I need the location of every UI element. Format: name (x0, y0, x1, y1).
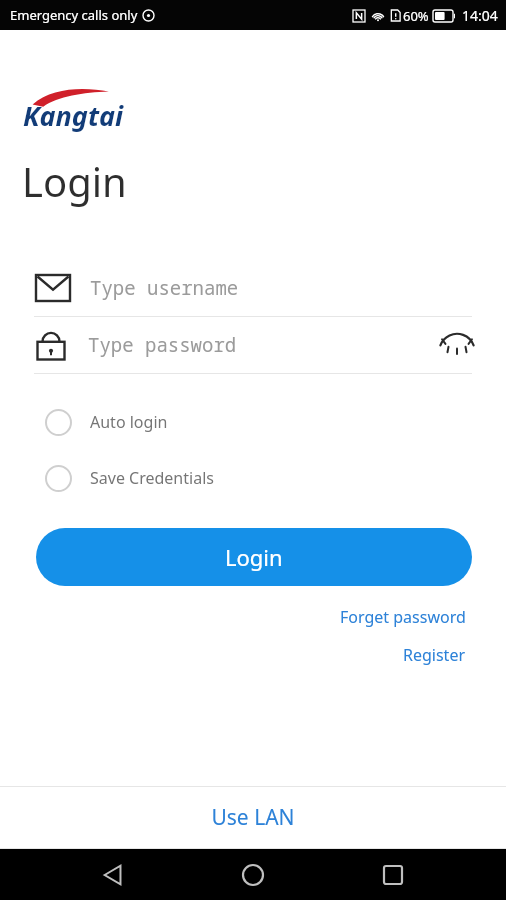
staticText: Save Credentials (90, 467, 214, 489)
staticText: 14:04 (462, 6, 498, 25)
button[interactable]: Register (387, 642, 506, 668)
button[interactable]: Auto login (0, 400, 506, 444)
staticText: Login (225, 542, 283, 572)
staticText: 60% (403, 7, 429, 25)
button[interactable]: Login (36, 528, 472, 586)
staticText: Type username (90, 275, 239, 301)
button[interactable]: Use LAN (0, 787, 506, 848)
button[interactable]: Back (86, 849, 140, 900)
button[interactable]: Recent apps (366, 849, 420, 900)
staticText: Register (403, 644, 466, 666)
staticText: Type password (88, 332, 237, 358)
button[interactable]: Type username (0, 260, 506, 316)
button[interactable]: Show password (436, 324, 478, 366)
button[interactable]: Type password (0, 317, 506, 373)
button[interactable]: Home (226, 849, 280, 900)
staticText: Use LAN (211, 803, 295, 832)
staticText: Forget password (340, 606, 466, 628)
button[interactable]: Forget password (324, 604, 506, 630)
staticText: Kangtai (23, 97, 124, 134)
staticText: Emergency calls only (10, 6, 138, 24)
staticText: Login (22, 154, 127, 208)
staticText: Auto login (90, 411, 168, 433)
button[interactable]: Save Credentials (0, 456, 506, 500)
